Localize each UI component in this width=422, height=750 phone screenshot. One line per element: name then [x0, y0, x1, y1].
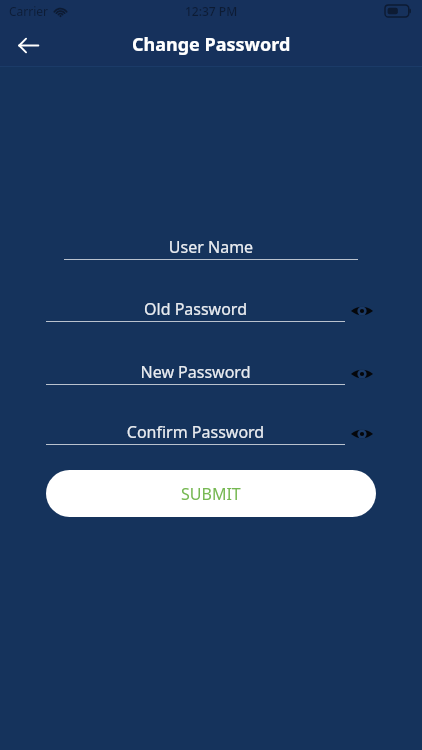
staticText: Change Password — [132, 32, 291, 57]
staticText: Carrier — [9, 3, 49, 19]
button[interactable]: Show password — [344, 362, 380, 386]
staticText: 12:37 PM — [185, 3, 238, 19]
button[interactable]: Old Password — [0, 298, 422, 322]
button[interactable]: Show password — [344, 299, 380, 323]
staticText: User Name — [64, 236, 358, 258]
staticText: New Password — [46, 361, 345, 383]
button[interactable]: Back — [6, 23, 50, 67]
staticText: Old Password — [46, 298, 345, 320]
button[interactable]: User Name — [0, 236, 422, 260]
button[interactable]: Confirm Password — [0, 421, 422, 445]
button[interactable]: Show password — [344, 422, 380, 446]
button[interactable]: SUBMIT — [46, 470, 376, 517]
button[interactable]: New Password — [0, 361, 422, 385]
staticText: SUBMIT — [181, 483, 241, 505]
staticText: Confirm Password — [46, 421, 345, 443]
